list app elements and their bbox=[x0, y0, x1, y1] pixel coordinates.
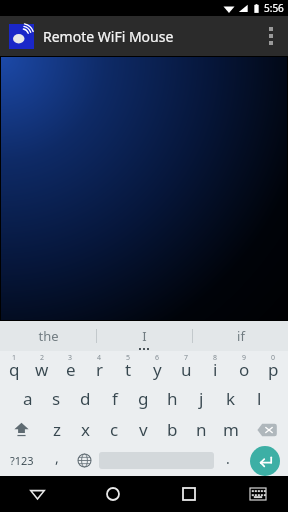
button[interactable]: 0 bbox=[259, 351, 288, 383]
staticText: n bbox=[196, 418, 207, 441]
staticText: if bbox=[237, 327, 245, 345]
staticText: f bbox=[112, 387, 118, 410]
staticText: b bbox=[167, 418, 178, 441]
staticText: 4 bbox=[97, 353, 102, 363]
staticText: 5:56 bbox=[264, 1, 284, 15]
button[interactable]: 7 bbox=[172, 351, 201, 383]
button[interactable]: n bbox=[187, 414, 216, 445]
button[interactable]: x bbox=[71, 414, 100, 445]
staticText: 5 bbox=[126, 353, 131, 363]
button[interactable]: . bbox=[214, 445, 241, 476]
button[interactable]: f bbox=[100, 383, 129, 414]
staticText: r bbox=[96, 358, 104, 381]
button[interactable]: l bbox=[245, 383, 274, 414]
staticText: v bbox=[139, 418, 148, 441]
button[interactable]: z bbox=[42, 414, 71, 445]
staticText: m bbox=[223, 418, 239, 441]
staticText: p bbox=[268, 358, 279, 381]
staticText: 9 bbox=[242, 353, 247, 363]
staticText: 6 bbox=[155, 353, 160, 363]
staticText: ?123 bbox=[10, 453, 34, 468]
button[interactable]: j bbox=[187, 383, 216, 414]
staticText: o bbox=[239, 358, 250, 381]
staticText: z bbox=[53, 418, 61, 441]
staticText: s bbox=[52, 387, 61, 410]
staticText: k bbox=[226, 387, 236, 410]
staticText: e bbox=[66, 358, 76, 381]
staticText: g bbox=[138, 387, 149, 410]
button[interactable]: Switch keyboard bbox=[227, 476, 288, 512]
button[interactable]: More options bbox=[254, 16, 288, 56]
button[interactable]: Backspace bbox=[245, 414, 288, 445]
staticText: y bbox=[153, 358, 162, 381]
staticText: a bbox=[23, 387, 33, 410]
button[interactable]: ?123 bbox=[0, 445, 44, 476]
button[interactable]: a bbox=[13, 383, 42, 414]
button[interactable]: Shift bbox=[0, 414, 42, 445]
staticText: 2 bbox=[40, 353, 45, 363]
button[interactable]: m bbox=[216, 414, 245, 445]
button[interactable]: d bbox=[71, 383, 100, 414]
button[interactable]: if bbox=[193, 321, 288, 351]
staticText: h bbox=[167, 387, 178, 410]
staticText: t bbox=[125, 358, 132, 381]
button[interactable]: s bbox=[42, 383, 71, 414]
button[interactable]: h bbox=[158, 383, 187, 414]
staticText: , bbox=[55, 448, 59, 467]
button[interactable]: 8 bbox=[201, 351, 230, 383]
button[interactable]: Recents bbox=[151, 476, 227, 512]
button[interactable]: , bbox=[44, 445, 69, 476]
button[interactable]: b bbox=[158, 414, 187, 445]
staticText: l bbox=[257, 387, 262, 410]
button[interactable]: 6 bbox=[143, 351, 172, 383]
staticText: w bbox=[35, 358, 49, 381]
staticText: . bbox=[226, 449, 230, 468]
staticText: i bbox=[213, 358, 218, 381]
staticText: 0 bbox=[271, 353, 276, 363]
staticText: I bbox=[142, 327, 147, 345]
staticText: 3 bbox=[68, 353, 73, 363]
button[interactable]: 2 bbox=[28, 351, 56, 383]
button[interactable] bbox=[1, 57, 287, 320]
staticText: the bbox=[38, 327, 59, 345]
button[interactable]: Enter bbox=[250, 446, 280, 476]
button[interactable]: the bbox=[0, 321, 96, 351]
button[interactable]: v bbox=[129, 414, 158, 445]
button[interactable]: g bbox=[129, 383, 158, 414]
button[interactable]: c bbox=[100, 414, 129, 445]
button[interactable]: 5 bbox=[114, 351, 143, 383]
staticText: 7 bbox=[184, 353, 189, 363]
button[interactable]: 9 bbox=[230, 351, 259, 383]
staticText: u bbox=[181, 358, 192, 381]
button[interactable]: 3 bbox=[56, 351, 85, 383]
button[interactable]: Change language bbox=[69, 445, 99, 476]
button[interactable]: Home bbox=[75, 476, 151, 512]
staticText: q bbox=[9, 358, 20, 381]
button[interactable]: Back bbox=[0, 476, 75, 512]
staticText: x bbox=[81, 418, 90, 441]
button[interactable]: I bbox=[97, 321, 192, 351]
staticText: d bbox=[80, 387, 91, 410]
staticText: c bbox=[110, 418, 119, 441]
button[interactable]: 4 bbox=[85, 351, 114, 383]
staticText: Remote WiFi Mouse bbox=[43, 27, 174, 46]
staticText: 8 bbox=[213, 353, 218, 363]
staticText: 1 bbox=[12, 353, 17, 363]
staticText: j bbox=[199, 387, 204, 410]
button[interactable]: k bbox=[216, 383, 245, 414]
button[interactable]: 1 bbox=[0, 351, 28, 383]
